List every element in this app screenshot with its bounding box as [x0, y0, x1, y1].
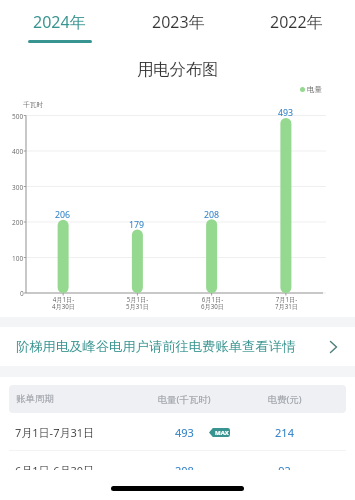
- staticText: 208: [175, 463, 194, 478]
- staticText: MAX: [215, 429, 229, 437]
- staticText: 6月1日- 6月30日: [201, 295, 224, 310]
- staticText: 92: [223, 463, 346, 478]
- staticText: 2023年: [152, 11, 205, 33]
- staticText: 阶梯用电及峰谷电用户请前往电费账单查看详情: [16, 338, 296, 355]
- staticText: 7月1日-7月31日: [15, 425, 145, 440]
- staticText: 200: [12, 218, 24, 227]
- staticText: 206: [55, 209, 71, 219]
- staticText: 208: [204, 209, 220, 219]
- staticText: 4月1日- 4月30日: [52, 295, 75, 310]
- staticText: 179: [129, 219, 145, 229]
- staticText: 2024年: [33, 11, 86, 33]
- staticText: 用电分布图: [137, 59, 219, 80]
- staticText: 7月1日- 7月31日: [275, 295, 298, 310]
- staticText: 214: [223, 425, 346, 440]
- staticText: 电量: [307, 85, 322, 94]
- staticText: 电费(元): [223, 393, 346, 406]
- staticText: 100: [12, 254, 24, 263]
- staticText: 300: [12, 183, 24, 192]
- staticText: 账单周期: [16, 393, 145, 405]
- staticText: 5月1日- 5月31日: [126, 295, 149, 310]
- staticText: 500: [12, 112, 24, 121]
- button[interactable]: 6月1日-6月30日: [0, 451, 355, 489]
- button[interactable]: 阶梯用电及峰谷电用户请前往电费账单查看详情: [0, 327, 355, 366]
- staticText: 6月1日-6月30日: [15, 463, 145, 478]
- other: 查看详情: [330, 341, 337, 353]
- button[interactable]: 7月1日-7月31日: [0, 413, 355, 451]
- button[interactable]: 2022年: [237, 0, 355, 48]
- staticText: 千瓦时: [23, 100, 44, 109]
- button[interactable]: 2023年: [119, 0, 237, 48]
- staticText: 400: [12, 147, 24, 156]
- staticText: 493: [175, 425, 194, 440]
- staticText: 0: [20, 289, 24, 298]
- staticText: 电量(千瓦时): [145, 393, 223, 406]
- staticText: 493: [278, 107, 294, 117]
- button[interactable]: 2024年: [0, 0, 119, 48]
- staticText: 2022年: [270, 11, 323, 33]
